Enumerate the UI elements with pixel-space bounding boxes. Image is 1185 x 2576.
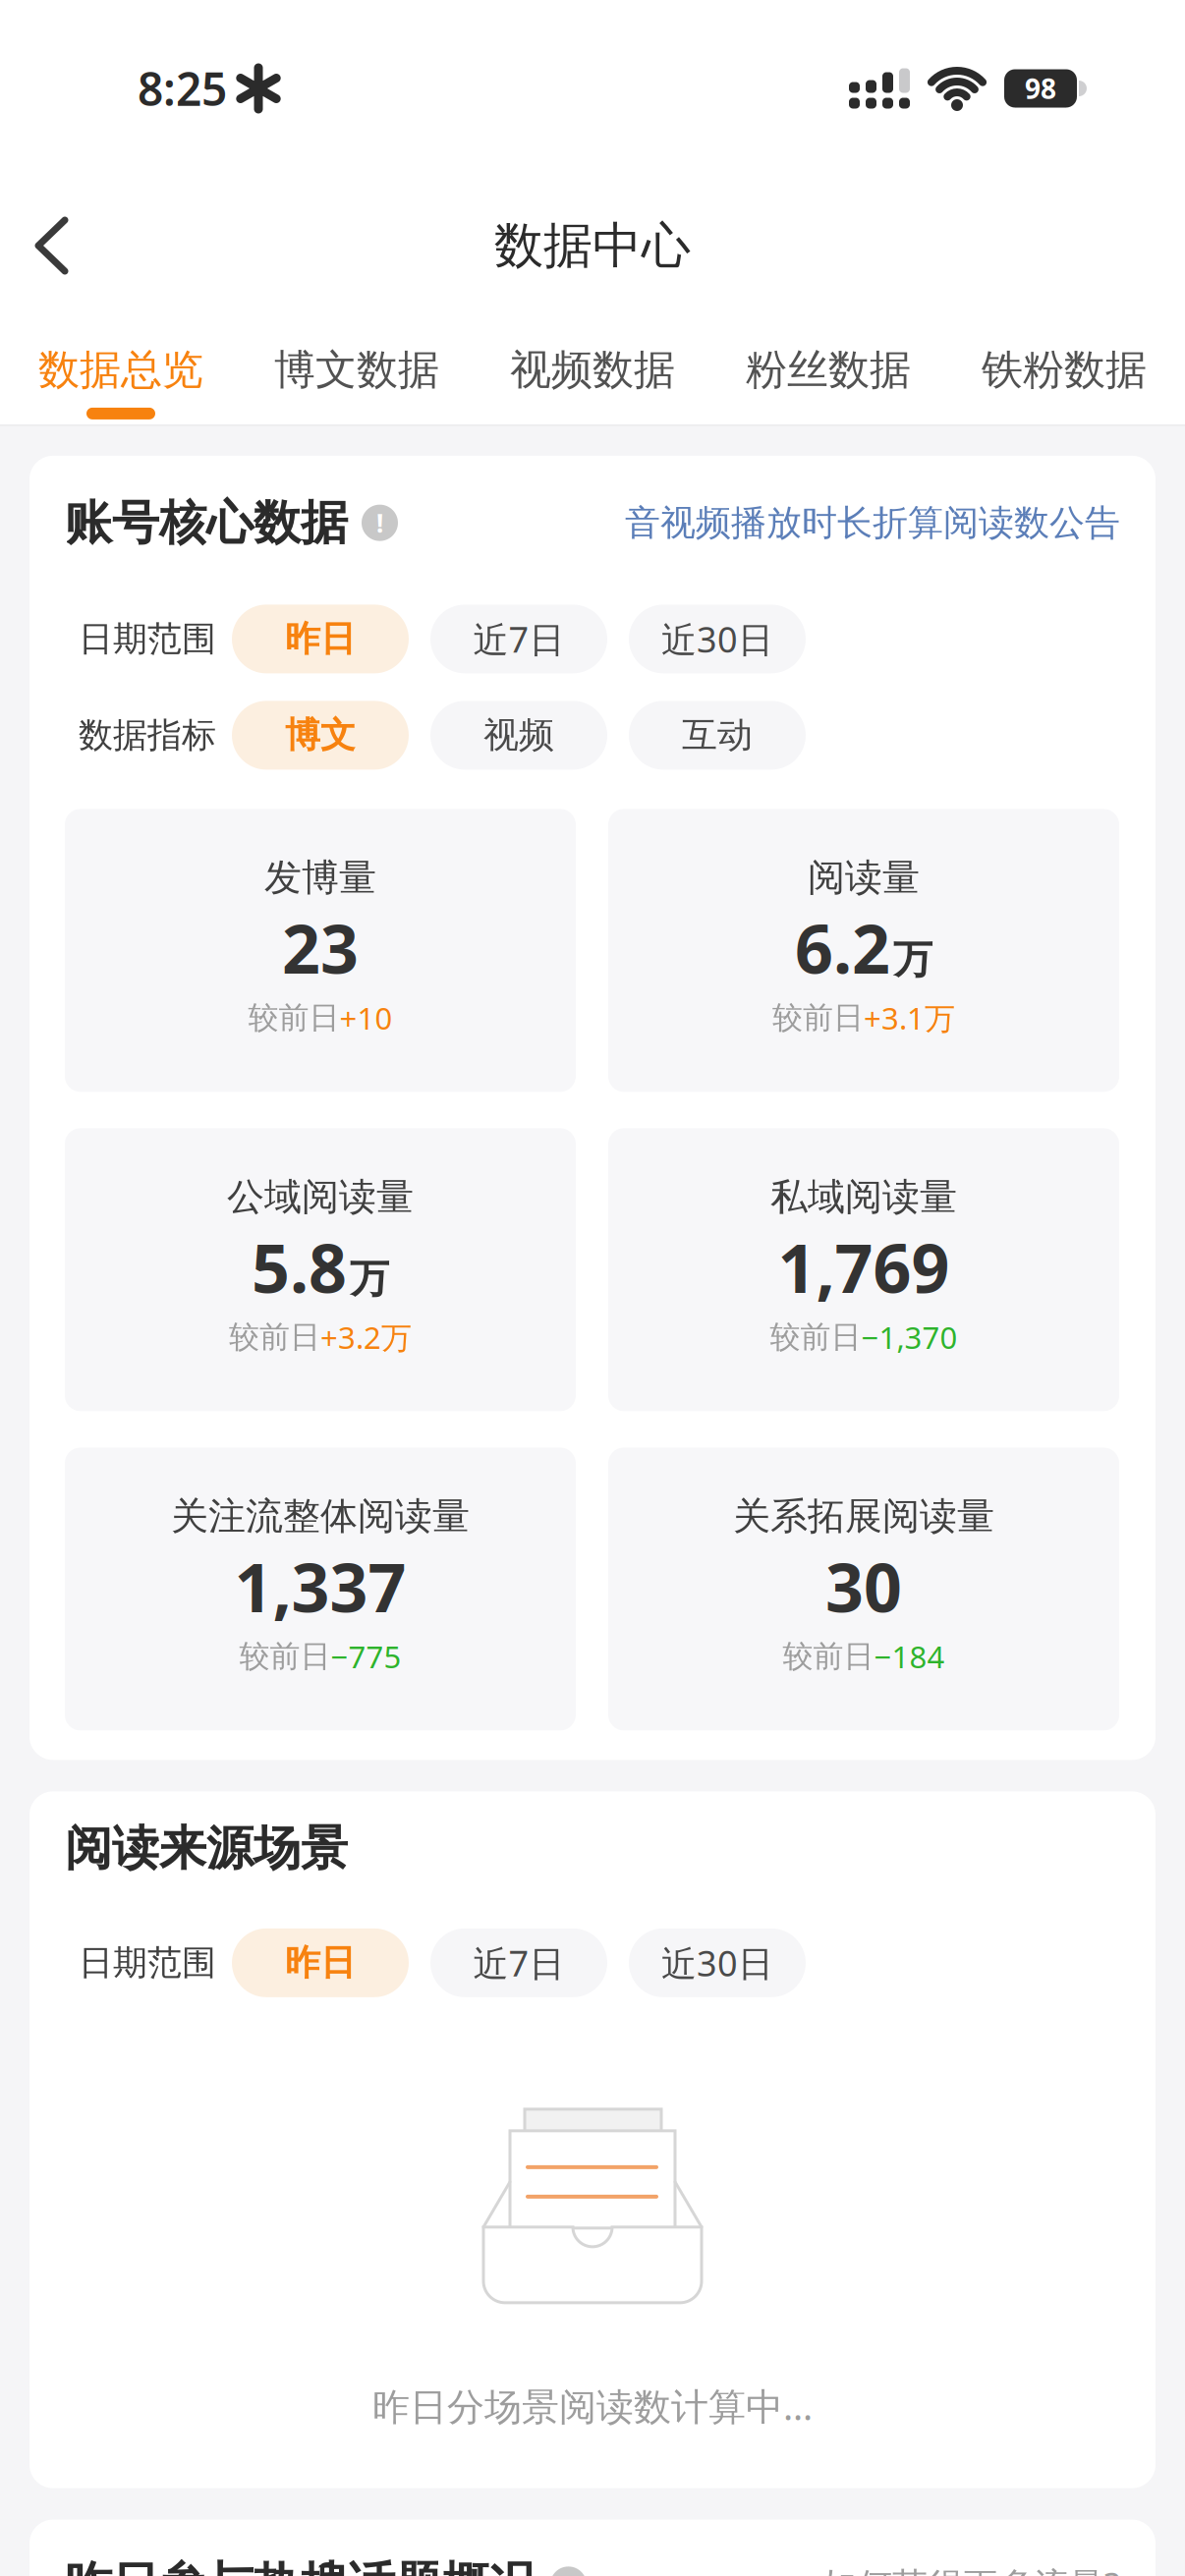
button[interactable]: 近30日	[629, 1928, 806, 1997]
button[interactable]: 昨日	[232, 605, 409, 673]
staticText: 数据总览	[38, 344, 203, 396]
staticText: 23	[282, 902, 359, 993]
button[interactable]: 近30日	[629, 605, 806, 673]
button[interactable]: 视频数据	[506, 344, 679, 419]
button[interactable]: 音视频播放时长折算阅读数公告	[625, 501, 1120, 545]
staticText: 近7日	[473, 615, 564, 663]
staticText: 昨日参与热搜话题概况	[65, 2555, 536, 2576]
staticText: −1,370	[861, 1316, 958, 1358]
staticText: 数据指标	[79, 714, 216, 757]
staticText: 关注流整体阅读量	[171, 1493, 470, 1540]
staticText: 30	[825, 1541, 902, 1632]
staticText: 近7日	[473, 1939, 564, 1987]
staticText: 较前日	[248, 999, 339, 1037]
staticText: +3.2万	[320, 1316, 412, 1358]
staticText: 阅读来源场景	[65, 1819, 348, 1878]
staticText: 近30日	[661, 1939, 773, 1987]
button[interactable]: Info	[550, 2566, 587, 2576]
staticText: 视频数据	[510, 344, 675, 396]
staticText: +10	[339, 997, 393, 1039]
staticText: 较前日	[783, 1637, 874, 1676]
button[interactable]: 近7日	[430, 1928, 607, 1997]
staticText: 6.2	[795, 902, 890, 993]
button[interactable]: 昨日	[232, 1928, 409, 1997]
staticText: 视频	[483, 713, 554, 758]
staticText: 较前日	[239, 1637, 331, 1676]
staticText: 日期范围	[79, 617, 216, 661]
staticText: −184	[874, 1636, 945, 1677]
staticText: 1,337	[234, 1541, 406, 1632]
staticText: 较前日	[772, 999, 864, 1037]
button[interactable]: 近7日	[430, 605, 607, 673]
staticText: 较前日	[770, 1318, 861, 1356]
staticText: 互动	[682, 713, 753, 758]
staticText: 博文	[285, 713, 356, 758]
staticText: 万	[350, 1254, 389, 1304]
staticText: 铁粉数据	[982, 344, 1147, 396]
staticText: 数据中心	[494, 215, 691, 277]
button[interactable]: Info	[362, 505, 398, 541]
button[interactable]: 博文数据	[270, 344, 443, 419]
staticText: 阅读量	[808, 854, 920, 901]
staticText: 8:25	[138, 58, 227, 119]
button[interactable]: 如何获得更多流量?	[821, 2561, 1120, 2576]
staticText: 账号核心数据	[65, 493, 348, 553]
staticText: 1,769	[778, 1221, 950, 1312]
staticText: 日期范围	[79, 1941, 216, 1984]
staticText: 如何获得更多流量?	[821, 2561, 1120, 2576]
staticText: −775	[331, 1636, 401, 1677]
staticText: +3.1万	[864, 997, 955, 1039]
staticText: 昨日	[285, 617, 356, 661]
staticText: 较前日	[229, 1318, 320, 1356]
staticText: 昨日	[285, 1941, 356, 1985]
staticText: 粉丝数据	[746, 344, 911, 396]
staticText: 博文数据	[274, 344, 439, 396]
staticText: !	[376, 505, 383, 540]
button[interactable]: Back	[0, 217, 75, 274]
staticText: 公域阅读量	[227, 1173, 414, 1221]
button[interactable]: 视频	[430, 701, 607, 770]
staticText: 98	[1025, 70, 1056, 107]
staticText: 昨日分场景阅读数计算中...	[372, 2380, 813, 2431]
button[interactable]: 数据总览	[34, 344, 207, 419]
staticText: 音视频播放时长折算阅读数公告	[625, 501, 1120, 545]
button[interactable]: 粉丝数据	[742, 344, 915, 419]
staticText: 近30日	[661, 615, 773, 663]
staticText: 发博量	[264, 854, 376, 901]
staticText: 关系拓展阅读量	[733, 1493, 994, 1540]
button[interactable]: 互动	[629, 701, 806, 770]
staticText: 5.8	[252, 1221, 347, 1312]
staticText: 万	[893, 935, 932, 984]
button[interactable]: 博文	[232, 701, 409, 770]
staticText: !	[565, 2567, 572, 2576]
button[interactable]: 铁粉数据	[978, 344, 1151, 419]
staticText: 私域阅读量	[770, 1173, 957, 1221]
